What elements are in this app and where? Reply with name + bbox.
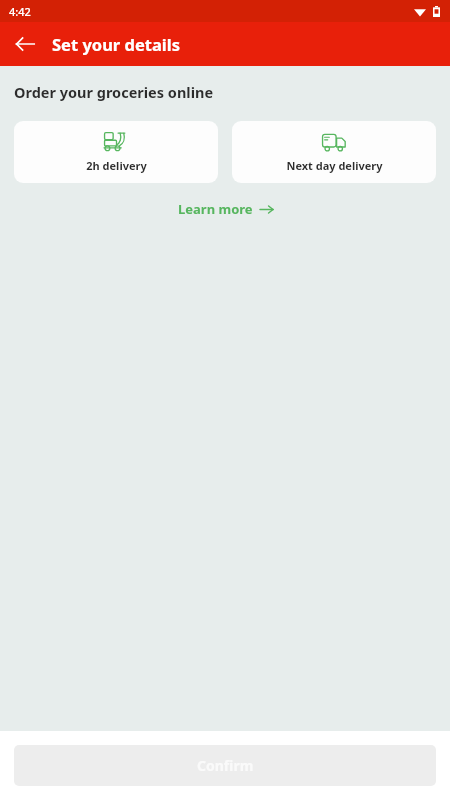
staticText: 4:42 — [9, 4, 31, 19]
button[interactable]: Back — [6, 25, 44, 63]
staticText: Set your details — [52, 33, 180, 55]
staticText: Order your groceries online — [14, 82, 214, 102]
staticText: Next day delivery — [286, 158, 383, 173]
button[interactable]: 2h delivery — [14, 121, 218, 183]
button[interactable]: Learn more — [170, 196, 281, 222]
staticText: Confirm — [197, 756, 254, 775]
staticText: Learn more — [178, 200, 253, 218]
button[interactable]: Next day delivery — [232, 121, 436, 183]
staticText: 2h delivery — [86, 158, 147, 173]
